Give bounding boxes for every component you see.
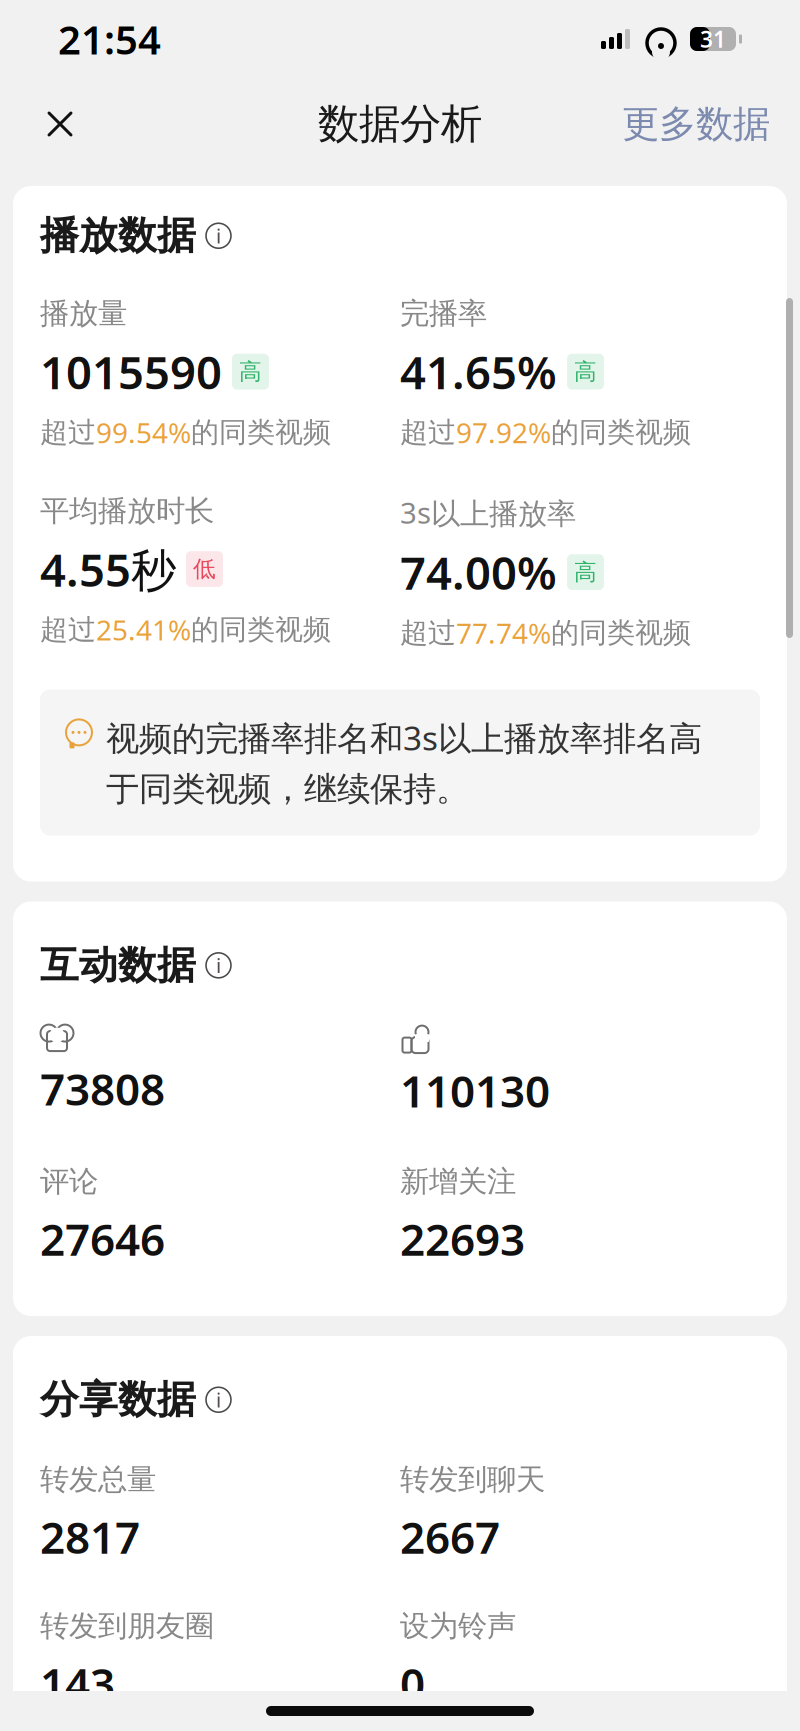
staticText: 转发总量 <box>40 1461 156 1497</box>
staticText: 超过 <box>400 616 456 650</box>
staticText: 低 <box>193 555 216 583</box>
staticText: 31 <box>700 24 726 54</box>
staticText: 更多数据 <box>622 101 770 147</box>
staticText: 74.00% <box>400 542 557 602</box>
staticText: 的同类视频 <box>191 612 331 647</box>
staticText: 高 <box>574 358 597 385</box>
staticText: 播放量 <box>40 295 127 331</box>
staticText: 的同类视频 <box>551 415 691 449</box>
staticText: 3s以上播放率 <box>400 493 576 532</box>
staticText: i <box>216 1386 221 1413</box>
staticText: i <box>216 222 221 249</box>
staticText: 新增关注 <box>400 1163 516 1199</box>
staticText: 1015590 <box>40 341 222 402</box>
staticText: 2817 <box>40 1507 140 1566</box>
staticText: 77.74% <box>456 614 551 651</box>
staticText: 超过 <box>40 415 96 449</box>
staticText: 27646 <box>40 1210 165 1268</box>
staticText: 互动数据 <box>40 942 196 989</box>
staticText: 分享数据 <box>40 1376 196 1423</box>
button[interactable]: 更多数据 <box>622 89 770 159</box>
button[interactable]: Close <box>30 94 90 154</box>
staticText: 平均播放时长 <box>40 493 214 529</box>
staticText: 0 <box>400 1654 425 1712</box>
staticText: 转发到聊天 <box>400 1461 545 1497</box>
staticText: 高 <box>239 358 262 385</box>
staticText: 设为铃声 <box>400 1608 516 1644</box>
staticText: 4.55秒 <box>40 539 176 599</box>
staticText: 播放数据 <box>40 212 196 259</box>
staticText: 视频的完播率排名和3s以上播放率排名高于同类视频，继续保持。 <box>106 715 702 810</box>
staticText: 110130 <box>400 1061 550 1119</box>
staticText: 73808 <box>40 1059 165 1117</box>
staticText: 2667 <box>400 1507 500 1566</box>
staticText: 超过 <box>40 612 96 647</box>
staticText: 转发到朋友圈 <box>40 1608 214 1644</box>
staticText: 完播率 <box>400 295 487 331</box>
staticText: 99.54% <box>96 414 191 451</box>
staticText: 数据分析 <box>318 99 482 149</box>
staticText: 143 <box>40 1654 115 1712</box>
staticText: 评论 <box>40 1163 98 1199</box>
staticText: 22693 <box>400 1210 525 1268</box>
staticText: 高 <box>574 558 597 586</box>
staticText: 41.65% <box>400 341 557 402</box>
staticText: i <box>216 952 221 979</box>
staticText: 97.92% <box>456 414 551 451</box>
staticText: 的同类视频 <box>191 415 331 449</box>
staticText: 的同类视频 <box>551 616 691 650</box>
staticText: 21:54 <box>58 12 161 65</box>
staticText: 25.41% <box>96 611 191 648</box>
staticText: 超过 <box>400 415 456 449</box>
